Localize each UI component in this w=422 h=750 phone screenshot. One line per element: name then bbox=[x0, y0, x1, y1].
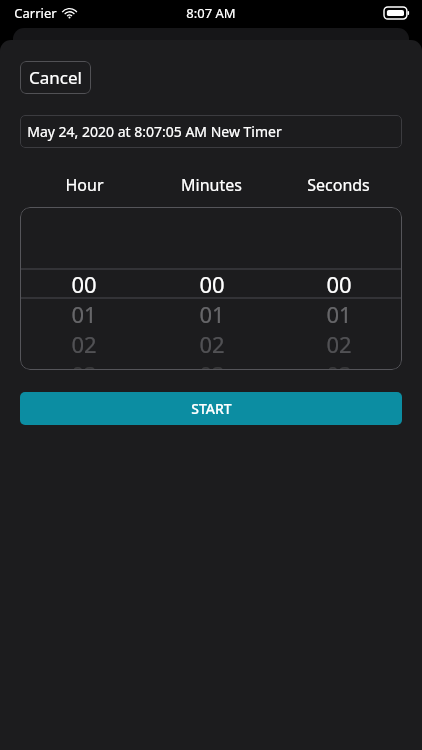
staticText: 8:07 AM bbox=[186, 4, 236, 22]
button[interactable]: Seconds picker bbox=[275, 207, 402, 370]
staticText: Carrier bbox=[14, 4, 57, 22]
staticText: Cancel bbox=[29, 66, 82, 89]
staticText: Seconds bbox=[307, 174, 370, 196]
staticText: 03 bbox=[199, 359, 225, 370]
staticText: 03 bbox=[326, 359, 352, 370]
staticText: 02 bbox=[326, 329, 352, 359]
button[interactable]: START bbox=[20, 392, 402, 425]
other: Battery bbox=[384, 7, 410, 19]
staticText: 01 bbox=[71, 299, 97, 329]
staticText: Hour bbox=[65, 174, 104, 196]
button[interactable]: May 24, 2020 at 8:07:05 AM New Timer bbox=[20, 115, 402, 148]
staticText: 00 bbox=[326, 269, 352, 299]
staticText: 01 bbox=[199, 299, 225, 329]
staticText: 03 bbox=[71, 359, 97, 370]
staticText: 02 bbox=[71, 329, 97, 359]
staticText: 00 bbox=[71, 269, 97, 299]
staticText: 02 bbox=[199, 329, 225, 359]
button[interactable]: Minutes picker bbox=[148, 207, 275, 370]
button[interactable]: Cancel bbox=[20, 61, 91, 94]
other: Wi-Fi bbox=[62, 8, 77, 19]
staticText: 01 bbox=[326, 299, 352, 329]
staticText: May 24, 2020 at 8:07:05 AM New Timer bbox=[27, 122, 282, 141]
staticText: START bbox=[191, 399, 232, 418]
staticText: Minutes bbox=[181, 174, 242, 196]
button[interactable]: Hour picker bbox=[20, 207, 148, 370]
staticText: 00 bbox=[199, 269, 225, 299]
